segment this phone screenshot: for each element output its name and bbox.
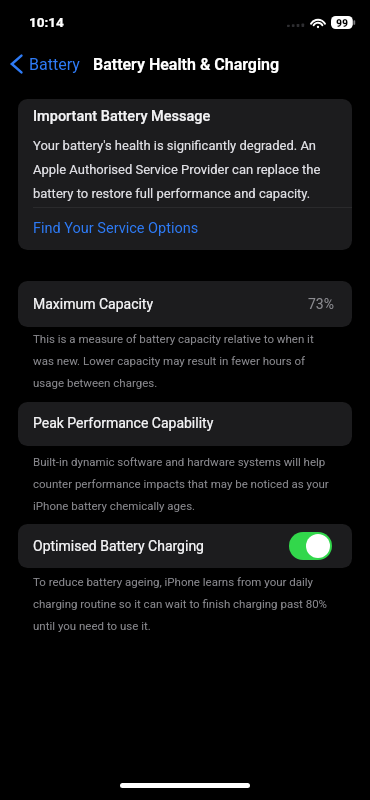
staticText: To reduce battery ageing, iPhone learns … xyxy=(33,569,333,635)
staticText: Battery Health & Charging xyxy=(93,55,280,74)
button[interactable]: Peak Performance Capability xyxy=(18,402,352,446)
staticText: Your battery's health is significantly d… xyxy=(33,131,337,203)
button[interactable]: Maximum Capacity xyxy=(18,281,352,327)
button[interactable]: Battery xyxy=(0,49,90,79)
staticText: 10:14 xyxy=(29,14,64,30)
staticText: Important Battery Message xyxy=(33,105,211,125)
staticText: Built-in dynamic software and hardware s… xyxy=(33,449,333,515)
staticText: Peak Performance Capability xyxy=(33,412,214,432)
staticText: This is a measure of battery capacity re… xyxy=(33,326,333,392)
staticText: Find Your Service Options xyxy=(33,217,199,237)
button[interactable]: Optimised Battery Charging toggle xyxy=(289,532,332,560)
button[interactable]: Find Your Service Options xyxy=(18,208,352,250)
staticText: Battery xyxy=(29,55,80,74)
staticText: 73% xyxy=(308,293,334,313)
staticText: Optimised Battery Charging xyxy=(33,535,204,555)
staticText: Maximum Capacity xyxy=(33,293,154,313)
staticText: 99 xyxy=(336,17,349,29)
